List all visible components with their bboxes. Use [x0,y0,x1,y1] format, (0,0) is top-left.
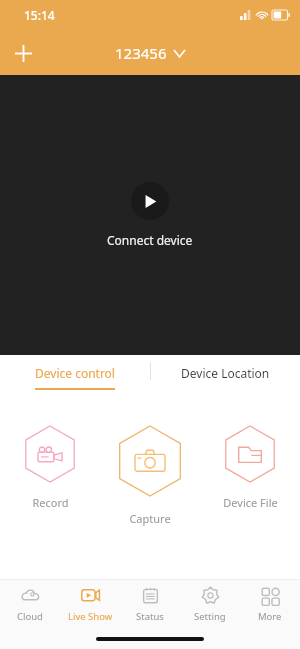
staticText: 15:14 [24,7,55,23]
staticText: 123456 [115,43,167,63]
button[interactable]: Device control [0,355,150,397]
button[interactable]: 123456 [115,43,185,63]
button[interactable]: Play, connect device [131,182,169,220]
button[interactable]: Device File [200,425,300,510]
staticText: Connect device [107,232,193,248]
button[interactable]: Cloud [0,586,60,623]
staticText: Device File [223,495,278,510]
staticText: Setting [194,610,226,623]
button[interactable]: Add device [8,38,38,68]
staticText: Device Location [181,365,270,381]
staticText: Device control [35,365,115,381]
staticText: Live Show [68,610,113,623]
button[interactable]: Record [0,425,100,510]
button[interactable]: Device Location [150,355,300,397]
staticText: Status [136,610,164,623]
button[interactable]: More [240,586,300,623]
button[interactable]: Capture [100,425,200,526]
staticText: More [258,610,282,623]
staticText: Record [32,495,69,510]
button[interactable]: Setting [180,586,240,623]
staticText: Cloud [17,610,43,623]
staticText: Capture [129,511,171,526]
button[interactable]: Live Show [60,586,120,623]
button[interactable]: Status [120,586,180,623]
